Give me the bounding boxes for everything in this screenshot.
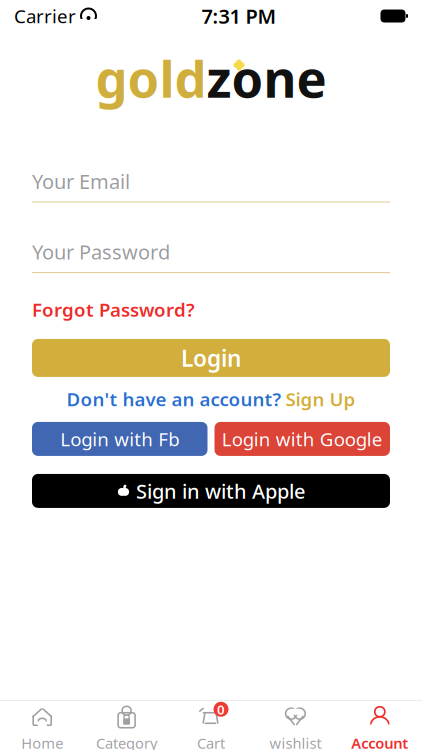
button[interactable]: Sign in with Apple <box>32 474 390 508</box>
staticText: 7:31 PM <box>201 3 276 29</box>
button[interactable]: Account <box>338 708 422 750</box>
staticText: zone <box>206 44 326 112</box>
button[interactable]: Login with Fb <box>32 422 207 456</box>
staticText: Forgot Password? <box>32 297 195 322</box>
staticText: gold <box>95 44 206 112</box>
staticText: Your Password <box>32 239 170 265</box>
staticText: Login with Google <box>222 426 383 451</box>
button[interactable]: Forgot Password? <box>32 297 195 322</box>
button[interactable]: Home <box>0 708 84 750</box>
staticText: Login <box>181 343 241 373</box>
staticText: Account <box>351 733 408 750</box>
button[interactable]: Don't have an account? <box>0 389 422 409</box>
button[interactable]: 0 <box>169 708 253 750</box>
staticText: Don't have an account? <box>66 386 281 411</box>
staticText: Your Email <box>32 168 130 195</box>
staticText: Sign Up <box>285 386 355 411</box>
button[interactable]: Login with Google <box>214 422 390 456</box>
staticText: Carrier <box>14 4 76 28</box>
button[interactable]: wishlist <box>253 708 338 750</box>
staticText: 0 <box>217 700 225 718</box>
button[interactable]: Category <box>84 708 169 750</box>
staticText: Sign in with Apple <box>136 478 305 504</box>
staticText: Cart <box>197 733 225 750</box>
staticText: Category <box>96 733 157 750</box>
staticText: Login with Fb <box>60 426 179 451</box>
button[interactable]: Login <box>32 339 390 377</box>
staticText: Home <box>21 733 63 750</box>
staticText: wishlist <box>269 733 321 750</box>
